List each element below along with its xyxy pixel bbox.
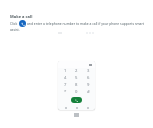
staticText: 7 xyxy=(64,82,67,88)
button[interactable]: 9 xyxy=(84,81,93,88)
button[interactable]: 4 xyxy=(61,74,70,81)
staticText: * xyxy=(64,89,67,95)
button[interactable]: 5 xyxy=(72,74,81,81)
staticText: Click xyxy=(10,21,18,26)
staticText: 8 xyxy=(75,82,78,88)
staticText: 0 xyxy=(75,89,78,95)
button[interactable]: 7 xyxy=(61,81,70,88)
staticText: 2 xyxy=(75,68,78,74)
staticText: and enter a telephone number to make a c… xyxy=(27,21,145,26)
button[interactable]: Tab 3 xyxy=(84,106,91,110)
button[interactable]: 0 xyxy=(72,88,81,95)
button[interactable]: 6 xyxy=(84,74,93,81)
button[interactable]: Tab 2 xyxy=(73,106,80,110)
button[interactable]: 2 xyxy=(72,67,81,74)
staticText: Make a call xyxy=(10,14,33,19)
button[interactable]: Tab 1 xyxy=(62,106,69,110)
button[interactable]: Dial xyxy=(19,20,26,27)
button[interactable]: 1 xyxy=(61,67,70,74)
button[interactable]: # xyxy=(84,88,93,95)
staticText: 3 xyxy=(87,68,90,74)
button[interactable]: 3 xyxy=(84,67,93,74)
staticText: 9 xyxy=(87,82,90,88)
staticText: 1 xyxy=(64,68,67,74)
staticText: assist. xyxy=(10,27,20,32)
button[interactable]: * xyxy=(61,88,70,95)
staticText: # xyxy=(87,89,90,95)
staticText: 4 xyxy=(64,75,67,81)
staticText: 6 xyxy=(87,75,90,81)
staticText: 5 xyxy=(75,75,78,81)
button[interactable]: Call xyxy=(71,97,82,103)
button[interactable]: 8 xyxy=(72,81,81,88)
